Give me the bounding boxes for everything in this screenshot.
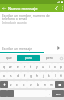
staticText: a [3,74,5,78]
button[interactable]: h [34,72,40,79]
staticText: Introducir asunto [2,21,27,25]
button[interactable]: u [40,63,46,70]
staticText: Nuevo mensaje [8,6,38,11]
button[interactable]: Symbols [0,90,7,97]
button[interactable]: para [17,55,40,61]
button[interactable]: Emoji [7,90,14,97]
staticText: . [49,92,50,96]
staticText: j [43,74,44,78]
button[interactable]: More options [60,4,64,12]
button[interactable]: l [52,72,58,79]
button[interactable]: j [40,72,46,79]
button[interactable]: Voice input [58,57,64,60]
staticText: Escribe un mensaje [2,46,33,50]
button[interactable]: t [28,63,34,70]
staticText: e [17,65,19,69]
button[interactable]: r [21,63,28,70]
staticText: o [54,65,56,69]
staticText: t [30,65,32,69]
button[interactable]: pero [40,56,58,60]
button[interactable]: v [27,81,34,88]
button[interactable]: g [28,72,34,79]
staticText: h [36,74,38,78]
button[interactable]: n [41,81,48,88]
staticText: w [9,65,12,69]
button[interactable]: x [14,81,20,88]
staticText: pero [46,56,53,60]
staticText: y [36,65,38,69]
staticText: g [30,74,32,78]
button[interactable]: i [46,63,52,70]
staticText: s [10,74,12,78]
button[interactable]: Backspace [55,81,64,88]
staticText: q [3,65,5,69]
staticText: Escribe un nombre, numero de telefono o … [2,13,50,20]
button[interactable]: s [7,72,14,79]
staticText: c [23,83,25,87]
staticText: para [25,56,32,60]
staticText: z [10,83,12,87]
button[interactable]: y [34,63,40,70]
button[interactable]: b [34,81,41,88]
button[interactable]: e [14,63,21,70]
staticText: ñ [60,74,62,78]
staticText: x [16,83,18,87]
button[interactable]: m [48,81,55,88]
button[interactable]: Enter [52,90,64,97]
button[interactable]: d [14,72,21,79]
button[interactable]: Send [53,42,64,54]
staticText: p [60,65,62,69]
staticText: n [44,83,46,87]
button[interactable]: Attach [53,4,60,12]
button[interactable]: . [46,90,52,97]
staticText: f [24,74,26,78]
staticText: i [49,65,50,69]
staticText: que [6,56,12,60]
button[interactable]: a [0,72,7,79]
staticText: k [48,74,50,78]
button[interactable]: f [21,72,28,79]
button[interactable]: q [0,63,7,70]
staticText: d [17,74,19,78]
button[interactable]: ñ [58,72,64,79]
button[interactable]: Shift [0,81,8,88]
button[interactable]: k [46,72,52,79]
button[interactable]: p [58,63,64,70]
button[interactable]: que [0,56,17,60]
button[interactable]: w [7,63,14,70]
button[interactable]: c [20,81,27,88]
staticText: u [42,65,44,69]
staticText: v [30,83,32,87]
staticText: ENT [56,92,61,95]
button[interactable]: Back [0,4,8,12]
staticText: l [55,74,56,78]
staticText: m [50,83,53,87]
staticText: b [37,83,39,87]
staticText: r [24,65,26,69]
button[interactable]: z [8,81,14,88]
button[interactable]: o [52,63,58,70]
